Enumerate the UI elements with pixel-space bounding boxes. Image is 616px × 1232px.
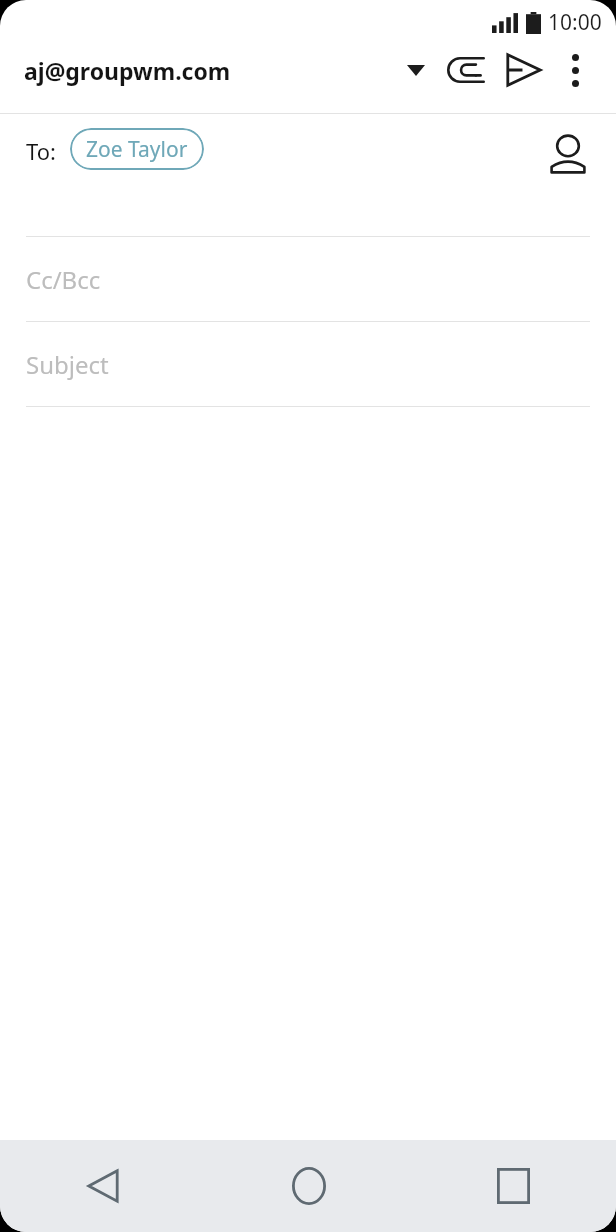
staticText: 10:00 <box>548 8 602 37</box>
staticText: aj@groupwm.com <box>24 55 231 86</box>
button[interactable]: Select account <box>394 48 438 92</box>
staticText: To: <box>26 136 56 166</box>
button[interactable]: Attach file <box>442 44 494 96</box>
staticText: Subject <box>26 348 109 381</box>
button[interactable]: Back <box>0 1140 206 1232</box>
button[interactable]: Subject <box>0 322 616 406</box>
button[interactable]: Zoe Taylor <box>70 128 204 170</box>
button[interactable]: Recent apps <box>411 1140 616 1232</box>
button[interactable]: More options <box>552 47 598 93</box>
button[interactable]: Send <box>498 44 550 96</box>
button[interactable]: Cc/Bcc <box>0 237 616 321</box>
staticText: Zoe Taylor <box>86 135 188 164</box>
staticText: Cc/Bcc <box>26 263 101 296</box>
button[interactable]: aj@groupwm.com <box>24 55 394 86</box>
button[interactable]: Add from contacts <box>542 128 594 180</box>
button[interactable]: Home <box>206 1140 411 1232</box>
